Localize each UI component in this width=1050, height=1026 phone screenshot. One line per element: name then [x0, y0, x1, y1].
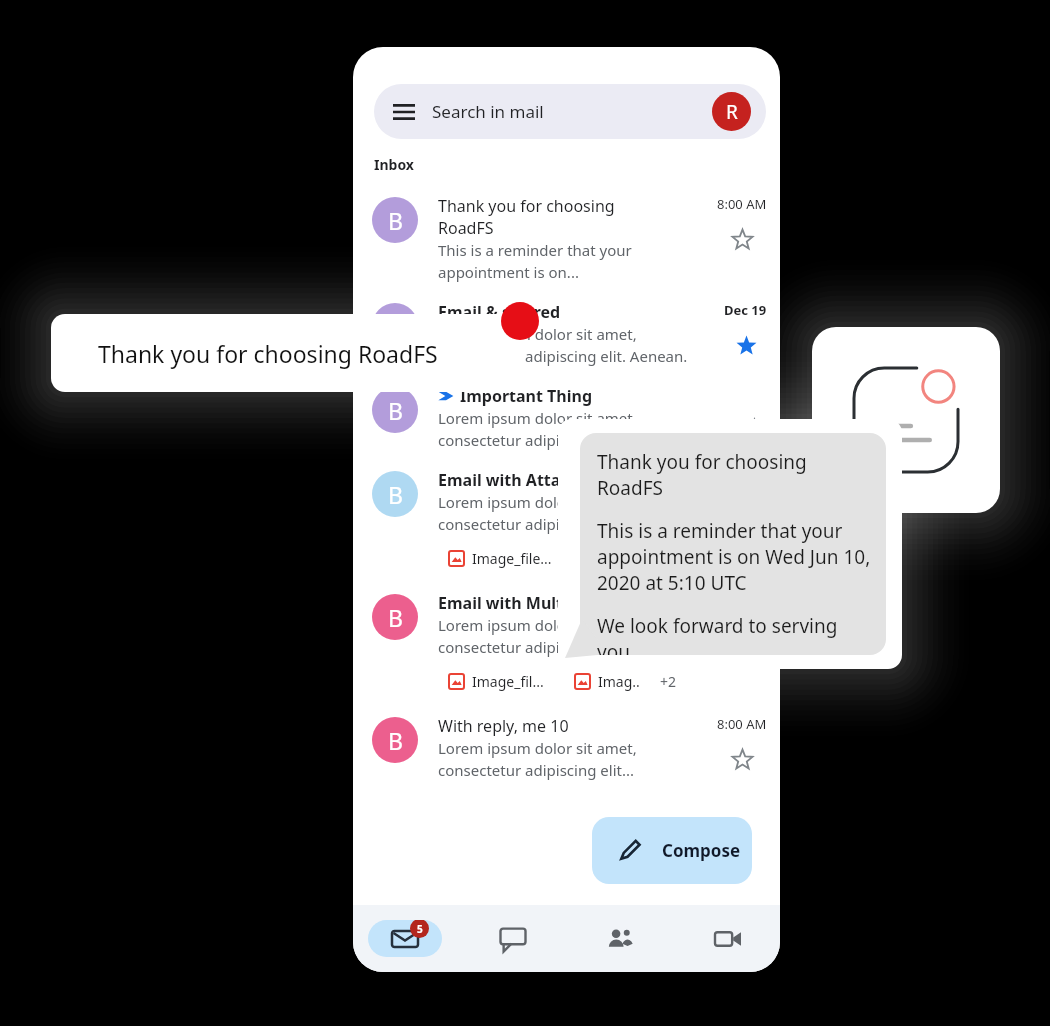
staticText: B: [388, 205, 403, 236]
button[interactable]: Star: [741, 500, 767, 526]
button[interactable]: B: [353, 376, 780, 460]
staticText: Thank you for choosing RoadFS: [597, 449, 807, 501]
staticText: Email with Multiple Attachmen...: [438, 592, 699, 614]
button[interactable]: Account: [712, 92, 751, 131]
staticText: Lorem ipsum dolor sit amet, consectetur …: [438, 324, 688, 367]
button[interactable]: B: [353, 706, 780, 790]
staticText: B: [388, 479, 403, 510]
staticText: B: [388, 602, 403, 633]
staticText: Inbox: [374, 155, 414, 174]
staticText: Lorem ipsum dolor sit amet, consectetur …: [438, 615, 696, 658]
button[interactable]: Meet: [691, 920, 765, 957]
staticText: We look forward to serving you.: [597, 613, 876, 655]
button[interactable]: Mail: [368, 920, 442, 957]
button[interactable]: Thank you for choosing RoadFS: [51, 314, 525, 392]
button[interactable]: Star: [729, 746, 755, 772]
staticText: Search in mail: [432, 100, 544, 123]
staticText: Important Thing: [460, 385, 593, 407]
staticText: Lorem ipsum dolor sit amet, consectetur …: [438, 408, 637, 451]
button[interactable]: Imag..: [564, 666, 651, 697]
staticText: Email with Attachment: [438, 469, 622, 491]
staticText: B: [388, 311, 403, 342]
staticText: 8:00 AM: [717, 195, 767, 213]
staticText: Thank you for choosing RoadFS: [438, 195, 615, 239]
button[interactable]: Menu: [374, 84, 766, 139]
button[interactable]: Chat: [476, 920, 550, 957]
button[interactable]: B: [353, 292, 780, 376]
staticText: R: [726, 99, 738, 125]
staticText: Compose: [662, 839, 741, 862]
staticText: This is a reminder that your appointment…: [438, 240, 632, 283]
staticText: Dec 19: [724, 301, 767, 319]
staticText: Thank you for choosing RoadFS: [98, 338, 438, 369]
button[interactable]: Notification: [812, 327, 1000, 513]
button[interactable]: B: [353, 460, 780, 583]
staticText: Lorem ipsum dolor sit amet, consectetur …: [438, 738, 637, 781]
staticText: Lorem ipsum dolor sit amet, consectetur …: [438, 492, 637, 535]
button[interactable]: Star: [741, 416, 767, 442]
button[interactable]: Image_fil...: [438, 666, 555, 697]
button[interactable]: Menu: [389, 97, 419, 127]
staticText: 5: [417, 922, 423, 936]
button[interactable]: B: [353, 583, 780, 706]
button[interactable]: Star: [733, 332, 759, 358]
staticText: +2: [660, 672, 677, 691]
staticText: With reply, me 10: [438, 715, 569, 737]
button[interactable]: Star: [729, 623, 755, 649]
staticText: Email & starred: [438, 301, 561, 323]
staticText: B: [388, 725, 403, 756]
button[interactable]: B: [353, 186, 780, 292]
staticText: Image_fil...: [472, 672, 544, 691]
staticText: Image_file...: [472, 549, 552, 568]
staticText: Imag..: [598, 672, 640, 691]
button[interactable]: Image_file...: [438, 543, 563, 574]
button[interactable]: Compose: [592, 817, 752, 884]
staticText: 8:00 AM: [717, 715, 767, 733]
button[interactable]: Star: [729, 226, 755, 252]
staticText: This is a reminder that your appointment…: [597, 518, 871, 596]
button[interactable]: Spaces: [583, 920, 657, 957]
staticText: B: [388, 395, 403, 426]
